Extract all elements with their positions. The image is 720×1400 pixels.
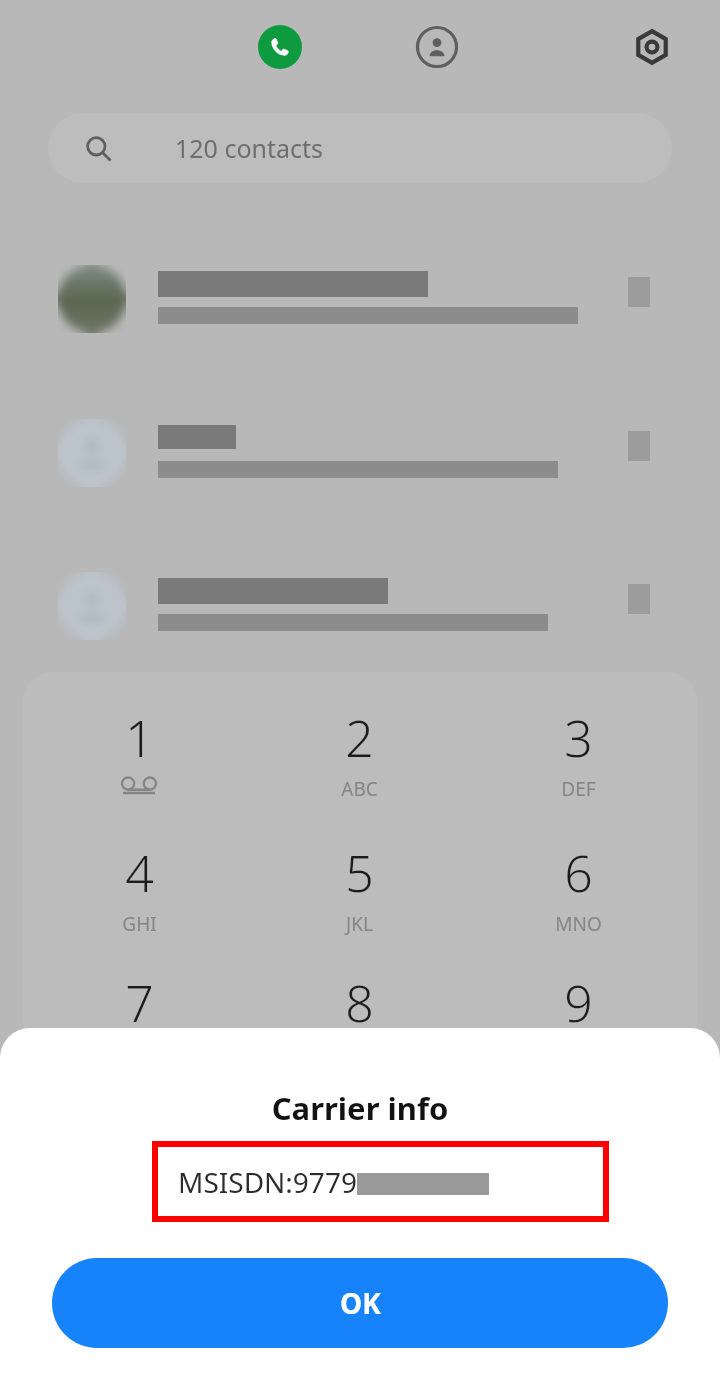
button[interactable]: 5: [299, 839, 419, 957]
staticText: ABC: [341, 776, 378, 802]
staticText: 7: [125, 969, 154, 1037]
staticText: MNO: [555, 911, 602, 937]
staticText: DEF: [561, 776, 596, 802]
button[interactable]: OK: [52, 1258, 668, 1348]
button[interactable]: [0, 562, 720, 712]
staticText: OK: [340, 1284, 381, 1322]
button[interactable]: 7: [79, 969, 199, 1072]
staticText: Carrier info: [0, 1087, 720, 1129]
staticText: 120 contacts: [175, 131, 324, 165]
staticText: 8: [345, 969, 374, 1037]
staticText: 9: [564, 969, 593, 1037]
staticText: 4: [125, 839, 154, 907]
button[interactable]: Keypad: [258, 25, 302, 69]
button[interactable]: 3: [518, 704, 638, 822]
button[interactable]: 8: [299, 969, 419, 1072]
button[interactable]: 6: [518, 839, 638, 957]
staticText: 1: [125, 704, 154, 772]
staticText: 5: [345, 839, 374, 907]
staticText: JKL: [346, 911, 373, 937]
button[interactable]: 1: [79, 704, 199, 822]
staticText: 3: [564, 704, 593, 772]
button[interactable]: 2: [299, 704, 419, 822]
staticText: 2: [345, 704, 374, 772]
staticText: GHI: [122, 911, 157, 937]
button[interactable]: 4: [79, 839, 199, 957]
staticText: 6: [564, 839, 593, 907]
button[interactable]: Settings: [630, 25, 674, 69]
button[interactable]: Contacts: [415, 25, 459, 69]
staticText: MSISDN:9779: [178, 1163, 357, 1201]
button[interactable]: [0, 255, 720, 405]
button[interactable]: [0, 409, 720, 559]
button[interactable]: 120 contacts: [48, 113, 672, 183]
button[interactable]: 9: [518, 969, 638, 1072]
